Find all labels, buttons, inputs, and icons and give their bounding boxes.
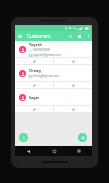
button[interactable]: Edit	[15, 82, 53, 88]
button[interactable]: Delete	[54, 82, 92, 88]
staticText: 9409009890	[33, 48, 51, 52]
staticText: Customers	[27, 33, 51, 39]
staticText: Chirag	[29, 68, 41, 73]
staticText: Sagar	[29, 95, 40, 100]
button[interactable]: Back	[24, 147, 32, 155]
button[interactable]: Delete	[54, 58, 92, 64]
staticText: chirag@gmail.com	[33, 74, 60, 78]
button[interactable]: Edit	[15, 106, 53, 112]
staticText: yogesh@gmail.com	[33, 53, 61, 57]
staticText: Yogesh	[29, 42, 42, 47]
button[interactable]: Search	[66, 31, 75, 41]
button[interactable]: More options	[84, 31, 92, 41]
button[interactable]: Edit	[15, 58, 53, 64]
button[interactable]: Add customer	[78, 133, 87, 142]
button[interactable]: Recent apps	[75, 147, 83, 155]
button[interactable]: Open navigation drawer	[15, 31, 25, 41]
button[interactable]: Call customer	[19, 133, 28, 142]
button[interactable]: Sort	[75, 31, 84, 41]
button[interactable]: Home	[50, 147, 58, 155]
button[interactable]: Delete	[54, 106, 92, 112]
